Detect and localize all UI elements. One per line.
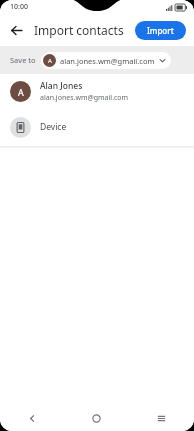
button[interactable]: Recent apps	[129, 405, 194, 431]
button[interactable]: A	[41, 52, 171, 69]
button[interactable]: Back	[0, 405, 64, 431]
staticText: alan.jones.wm@gmail.com	[40, 93, 129, 103]
staticText: Alan Jones	[40, 80, 83, 92]
staticText: Import contacts	[34, 22, 124, 38]
staticText: Device	[40, 121, 67, 133]
button[interactable]: Device	[0, 108, 194, 146]
staticText: alan.jones.wm@gmail.com	[60, 56, 155, 66]
staticText: A	[18, 86, 24, 98]
staticText: 10:00	[10, 2, 28, 12]
staticText: Import	[147, 25, 174, 36]
button[interactable]: Back	[0, 14, 32, 46]
staticText: A	[48, 57, 52, 65]
button[interactable]: Import	[135, 21, 186, 40]
staticText: Save to	[10, 55, 36, 65]
button[interactable]: Home	[64, 405, 129, 431]
button[interactable]: A	[0, 74, 194, 108]
